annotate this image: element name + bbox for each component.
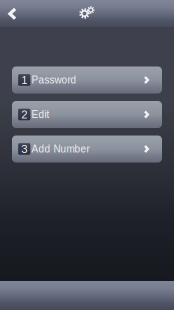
button[interactable]: Settings [74,0,100,27]
button[interactable]: 3 [12,135,162,162]
staticText: Edit [32,109,50,120]
staticText: 3 [21,143,27,155]
staticText: 1 [21,74,27,86]
button[interactable]: 2 [12,101,162,128]
staticText: Password [32,74,77,86]
button[interactable]: 1 [12,66,162,93]
staticText: Add Number [32,143,90,155]
button[interactable]: Back [0,0,30,27]
staticText: 2 [21,108,27,121]
